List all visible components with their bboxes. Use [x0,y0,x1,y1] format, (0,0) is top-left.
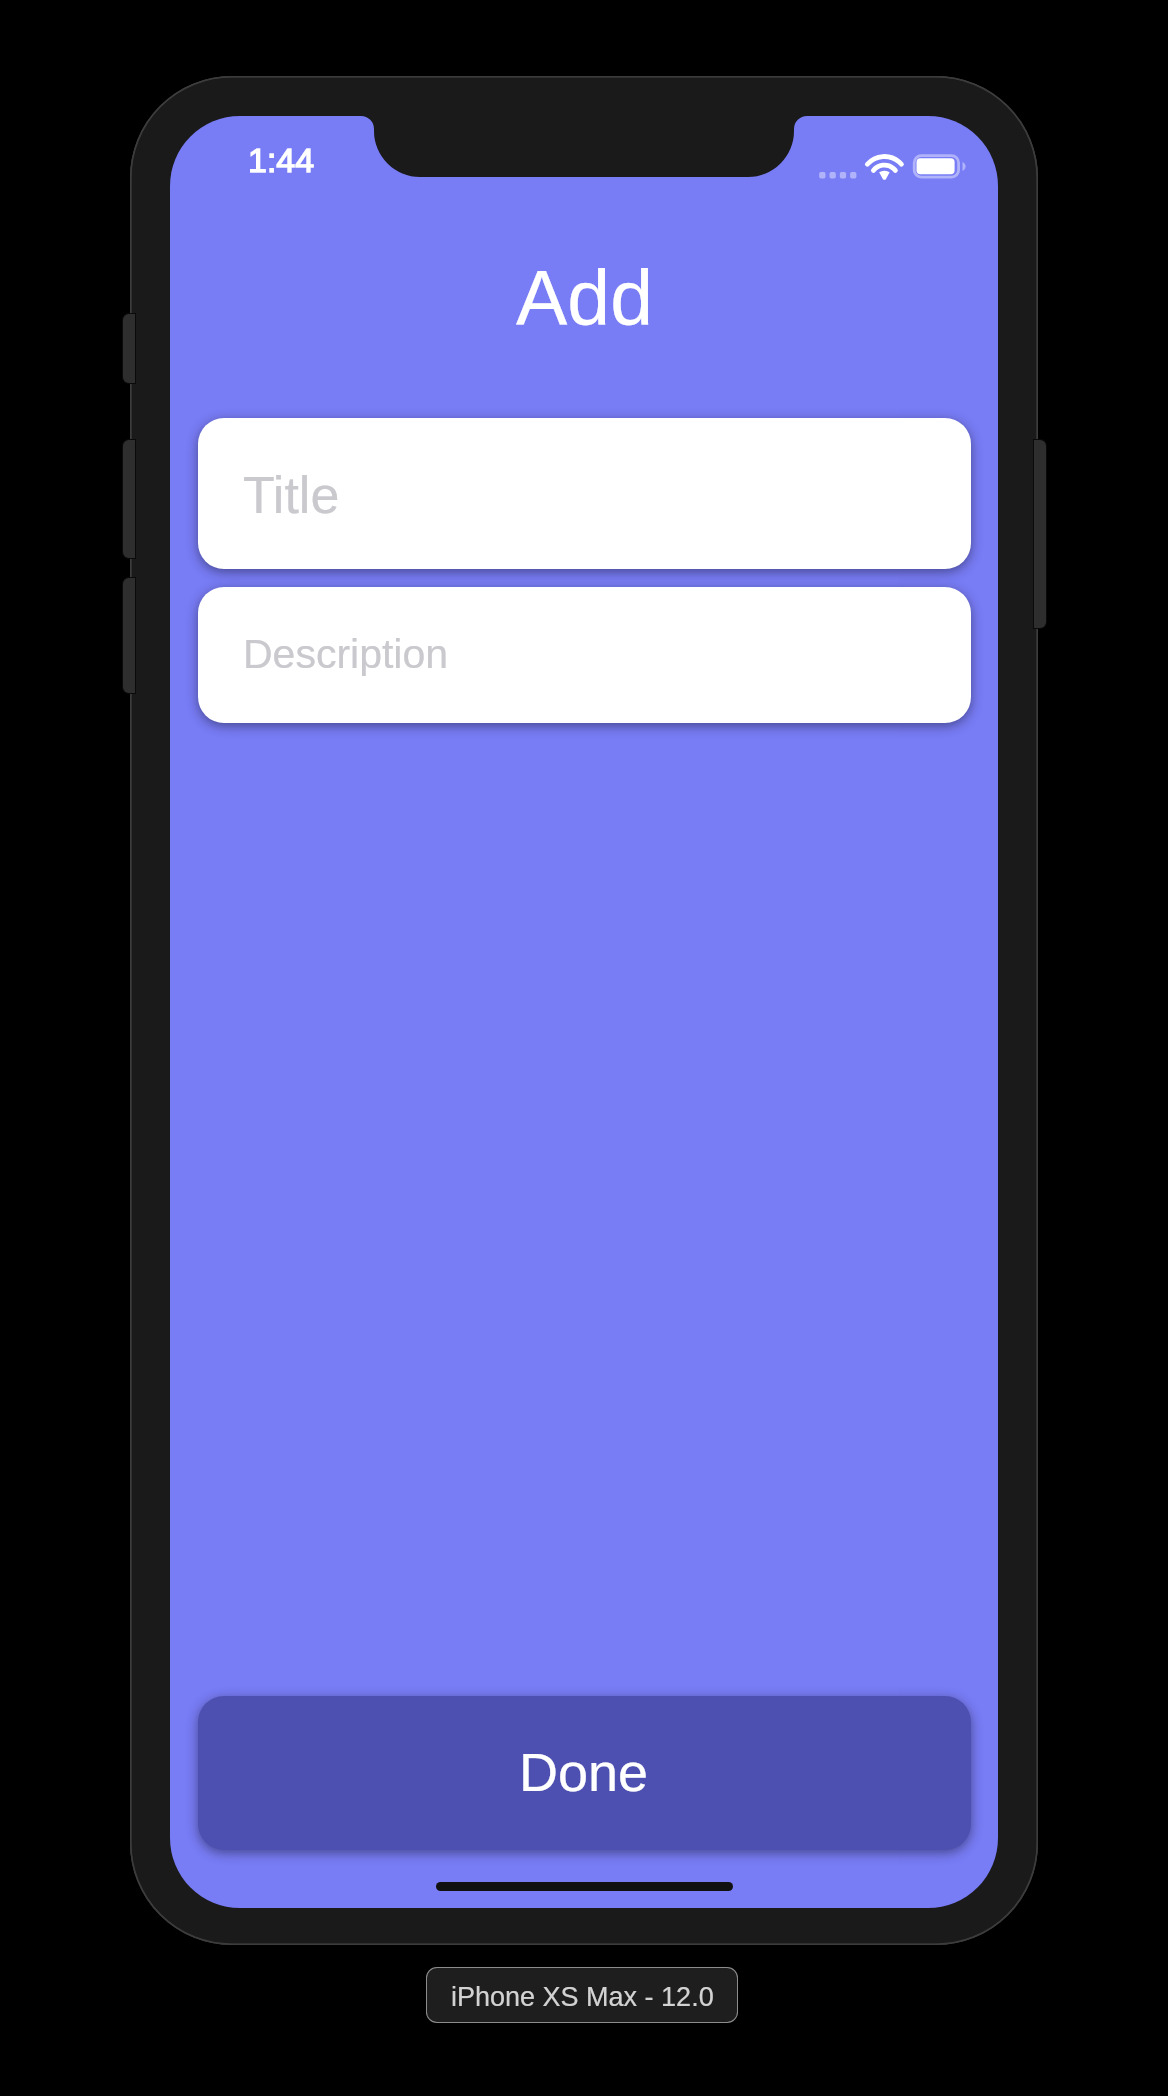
staticText: Title [243,466,340,524]
button[interactable]: Title [198,418,971,569]
other: Cellular, Wi-Fi and battery status [810,146,980,188]
staticText: Add [516,255,654,341]
staticText: 1:44 [248,141,315,179]
button[interactable]: iPhone XS Max - 12.0 [426,1967,738,2023]
staticText: Done [519,1742,649,1802]
button[interactable]: Done [198,1696,971,1850]
staticText: iPhone XS Max - 12.0 [451,1982,714,2012]
button[interactable]: Description [198,587,971,723]
staticText: Description [243,631,449,677]
